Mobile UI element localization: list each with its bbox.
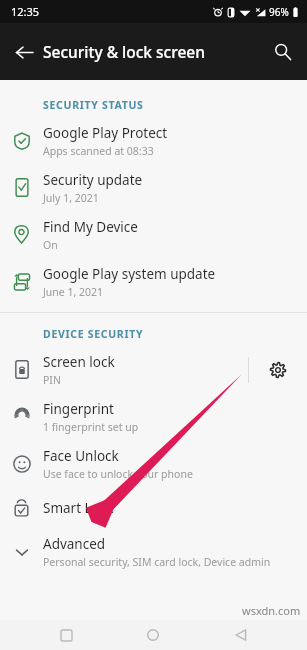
button[interactable]: Screen lock: [0, 346, 307, 393]
staticText: Use face to unlock your phone: [43, 467, 193, 481]
staticText: Google Play Protect: [43, 124, 168, 142]
staticText: Screen lock: [43, 353, 115, 371]
button[interactable]: Search: [264, 33, 302, 71]
button[interactable]: Fingerprint: [0, 393, 307, 440]
button[interactable]: Screen lock settings: [249, 346, 307, 393]
staticText: Security update: [43, 171, 143, 189]
staticText: DEVICE SECURITY: [43, 327, 144, 341]
staticText: wsxdn.com: [242, 603, 301, 618]
staticText: 96%: [269, 5, 289, 19]
button[interactable]: Home: [140, 622, 166, 648]
staticText: Smart Lock: [43, 499, 114, 517]
button[interactable]: Face Unlock: [0, 440, 307, 487]
staticText: Apps scanned at 08:33: [43, 144, 154, 158]
button[interactable]: Google Play Protect: [0, 117, 307, 164]
staticText: SECURITY STATUS: [43, 98, 144, 112]
staticText: Security & lock screen: [43, 41, 205, 62]
staticText: June 1, 2021: [43, 285, 104, 299]
button[interactable]: Back: [228, 622, 254, 648]
staticText: Google Play system update: [43, 265, 216, 283]
button[interactable]: Find My Device: [0, 211, 307, 258]
button[interactable]: Security update: [0, 164, 307, 211]
button[interactable]: Advanced: [0, 528, 307, 575]
staticText: 12:35: [11, 4, 40, 19]
button[interactable]: Back: [5, 33, 43, 71]
staticText: Fingerprint: [43, 400, 114, 418]
staticText: July 1, 2021: [43, 191, 99, 205]
staticText: PIN: [43, 373, 61, 387]
button[interactable]: Smart Lock: [0, 487, 307, 528]
staticText: Face Unlock: [43, 447, 119, 465]
staticText: On: [43, 238, 58, 252]
staticText: Advanced: [43, 535, 106, 553]
staticText: Personal security, SIM card lock, Device…: [43, 555, 295, 569]
button[interactable]: Google Play system update: [0, 258, 307, 305]
staticText: Find My Device: [43, 218, 138, 236]
staticText: 1 fingerprint set up: [43, 420, 139, 434]
button[interactable]: Recents: [53, 622, 79, 648]
